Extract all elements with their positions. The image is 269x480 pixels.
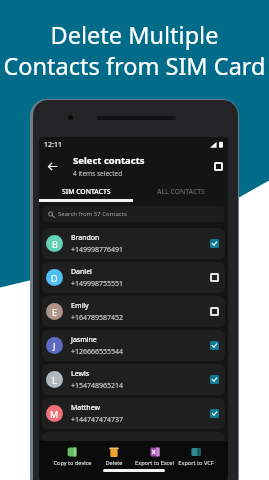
staticText: E (52, 306, 58, 318)
staticText: Export to Excel (135, 459, 174, 466)
staticText: ALL CONTACTS (157, 187, 205, 196)
button[interactable]: L (42, 364, 225, 395)
button[interactable]: Select all (209, 157, 227, 175)
staticText: 12:11 (44, 140, 62, 150)
staticText: +149998776491 (71, 245, 124, 255)
button[interactable]: D (42, 262, 225, 293)
button[interactable]: Search from 57 Contacts (43, 206, 224, 222)
staticText: Delete Multiple Contacts from SIM Card (0, 19, 269, 81)
staticText: J (53, 340, 56, 352)
button[interactable]: J (42, 330, 225, 361)
staticText: SIM CONTACTS (62, 187, 111, 196)
staticText: +126666555544 (71, 347, 124, 357)
staticText: Daniel (71, 267, 92, 277)
staticText: Matthew (71, 403, 100, 413)
staticText: B (52, 238, 58, 250)
staticText: +164789587452 (71, 313, 124, 323)
staticText: Emily (71, 301, 89, 311)
button[interactable]: Export to Excel (134, 441, 175, 466)
staticText: Select contacts (73, 154, 145, 167)
staticText: Brandon (71, 233, 100, 243)
staticText: Export to VCF (178, 459, 214, 466)
button[interactable]: M (42, 398, 225, 429)
staticText: L (52, 374, 57, 386)
button[interactable]: Copy to device (51, 441, 93, 466)
staticText: Lewis (71, 369, 90, 379)
staticText: Search from 57 Contacts (58, 210, 127, 218)
staticText: +154748965214 (71, 381, 124, 391)
staticText: D (51, 272, 58, 284)
staticText: 4 items selected (73, 169, 123, 178)
button[interactable]: SIM CONTACTS (39, 184, 133, 199)
staticText: Copy to device (53, 459, 92, 466)
staticText: +149998755551 (71, 279, 124, 289)
button[interactable]: Export to VCF (175, 441, 216, 466)
staticText: Jasmine (71, 335, 97, 345)
button[interactable]: ALL CONTACTS (133, 184, 228, 199)
staticText: M (50, 408, 59, 420)
button[interactable]: Back (43, 157, 61, 175)
button[interactable]: E (42, 296, 225, 327)
button[interactable]: Delete (93, 441, 134, 466)
staticText: +144747474737 (71, 415, 124, 425)
staticText: Delete (105, 459, 123, 466)
button[interactable]: B (42, 228, 225, 259)
